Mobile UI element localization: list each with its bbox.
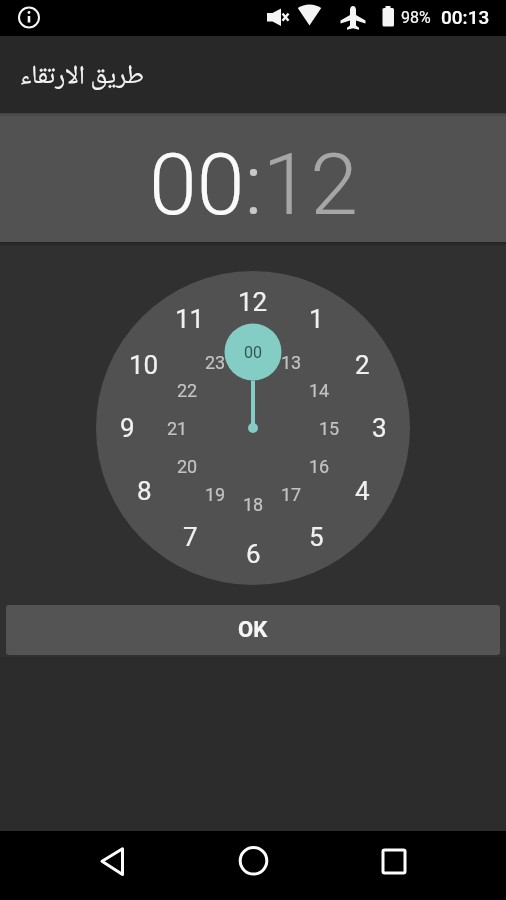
- staticText: 16: [309, 456, 330, 477]
- staticText: 00: [244, 343, 262, 362]
- button[interactable]: [168, 831, 337, 900]
- staticText: 9: [120, 413, 135, 443]
- staticText: 1: [309, 304, 324, 334]
- staticText: 17: [281, 484, 302, 505]
- staticText: 19: [205, 484, 226, 505]
- staticText: OK: [238, 617, 268, 643]
- staticText: 00:13: [441, 6, 490, 28]
- staticText: 8: [137, 476, 152, 506]
- button[interactable]: [0, 831, 168, 900]
- staticText: 23: [205, 352, 226, 373]
- staticText: 98%: [401, 8, 431, 27]
- staticText: 22: [177, 380, 198, 401]
- staticText: 15: [319, 418, 340, 439]
- staticText: 6: [246, 539, 261, 569]
- staticText: 00:12: [149, 134, 358, 235]
- staticText: 14: [309, 380, 330, 401]
- staticText: 11: [175, 304, 205, 334]
- staticText: 5: [309, 522, 324, 552]
- staticText: 18: [243, 494, 264, 515]
- staticText: 4: [355, 476, 370, 506]
- staticText: 12: [238, 287, 268, 317]
- staticText: 21: [167, 418, 188, 439]
- staticText: 7: [183, 522, 198, 552]
- staticText: 20: [177, 456, 198, 477]
- staticText: 3: [372, 413, 387, 443]
- staticText: 2: [355, 350, 370, 380]
- button[interactable]: [337, 831, 506, 900]
- button[interactable]: OK: [6, 605, 500, 655]
- staticText: 10: [129, 350, 159, 380]
- staticText: طريق الارتقاء: [20, 59, 144, 94]
- staticText: 13: [281, 352, 302, 373]
